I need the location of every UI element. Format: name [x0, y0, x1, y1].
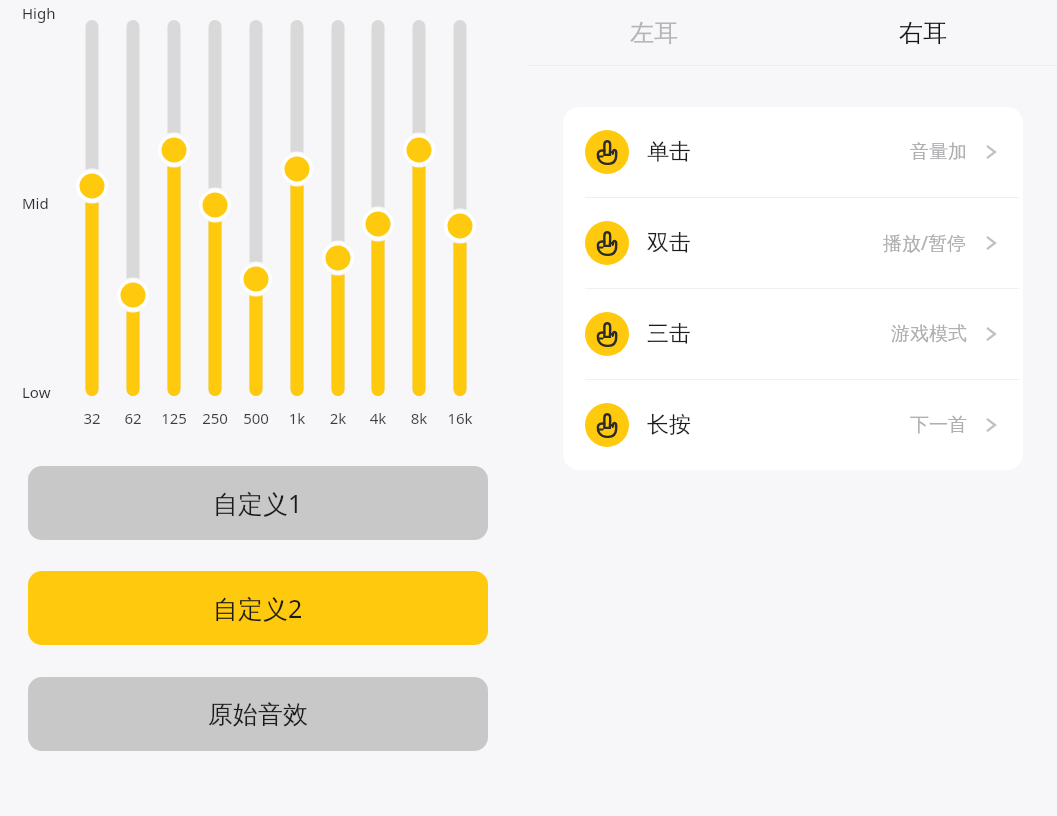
staticText: 125 [152, 408, 196, 428]
staticText: 右耳 [899, 18, 947, 48]
staticText: 16k [438, 408, 482, 428]
staticText: 4k [356, 408, 400, 428]
staticText: 下一首 [910, 413, 967, 437]
staticText: 2k [316, 408, 360, 428]
staticText: 三击 [647, 320, 691, 348]
staticText: 8k [397, 408, 441, 428]
button[interactable]: 单击 [563, 107, 1023, 197]
other: Open [981, 415, 1001, 435]
staticText: 长按 [647, 411, 691, 439]
staticText: 自定义1 [213, 486, 303, 520]
staticText: 双击 [647, 229, 691, 257]
staticText: 音量加 [910, 140, 967, 164]
staticText: 单击 [647, 138, 691, 166]
button[interactable]: 长按 [563, 380, 1023, 470]
staticText: 播放/暂停 [883, 230, 967, 256]
other: Open [981, 324, 1001, 344]
staticText: 1k [275, 408, 319, 428]
staticText: Low [22, 382, 51, 402]
staticText: 游戏模式 [891, 322, 967, 346]
button[interactable]: 右耳 [788, 0, 1057, 66]
other: Open [981, 233, 1001, 253]
button[interactable]: 双击 [563, 198, 1023, 288]
staticText: 62 [111, 408, 155, 428]
staticText: High [22, 3, 56, 23]
staticText: 500 [234, 408, 278, 428]
staticText: 250 [193, 408, 237, 428]
staticText: 自定义2 [213, 591, 303, 625]
staticText: Mid [22, 193, 49, 213]
staticText: 原始音效 [208, 699, 308, 730]
button[interactable]: 左耳 [520, 0, 788, 66]
staticText: 左耳 [630, 18, 678, 48]
other: Open [981, 142, 1001, 162]
staticText: 32 [70, 408, 114, 428]
button[interactable]: 自定义2 [28, 571, 488, 645]
button[interactable]: 三击 [563, 289, 1023, 379]
button[interactable]: 自定义1 [28, 466, 488, 540]
button[interactable]: 原始音效 [28, 677, 488, 751]
